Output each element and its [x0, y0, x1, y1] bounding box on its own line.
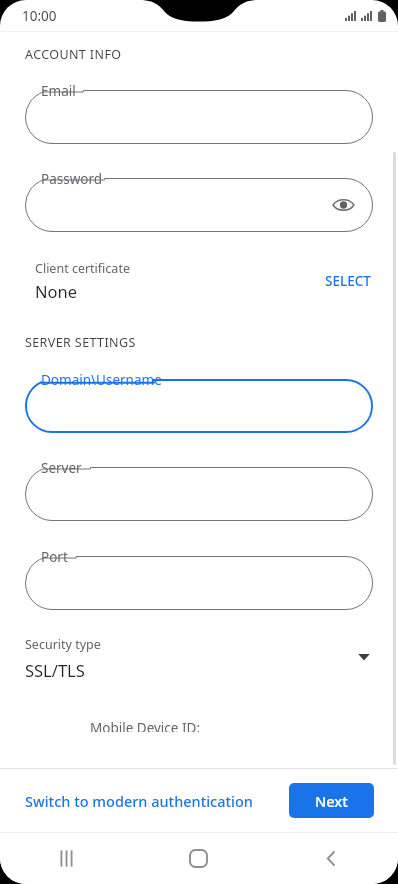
staticText: Server	[41, 459, 82, 477]
button[interactable]: Recent apps	[0, 832, 132, 884]
button[interactable]: Switch to modern authentication	[14, 783, 264, 819]
staticText: Switch to modern authentication	[25, 791, 253, 811]
staticText: Email	[41, 82, 76, 100]
staticText: None	[35, 280, 78, 302]
button[interactable]: Domain\Username	[0, 367, 398, 433]
button[interactable]: Show password	[327, 189, 359, 221]
staticText: SSL/TLS	[25, 659, 85, 681]
button[interactable]: Email	[0, 78, 398, 144]
button[interactable]: SELECT	[321, 266, 375, 296]
button[interactable]: Home	[132, 832, 265, 884]
button[interactable]: Security type	[0, 629, 398, 687]
button[interactable]: Port	[0, 544, 398, 610]
button[interactable]: Server	[0, 455, 398, 521]
staticText: Password	[41, 170, 103, 188]
staticText: Client certificate	[35, 260, 130, 277]
staticText: ACCOUNT INFO	[25, 46, 122, 63]
staticText: Domain\Username	[41, 371, 162, 389]
staticText: Next	[315, 791, 348, 811]
staticText: SELECT	[325, 272, 371, 290]
staticText: Mobile Device ID:	[90, 721, 200, 732]
button[interactable]: Show password	[0, 166, 398, 232]
button[interactable]: Next	[289, 783, 374, 818]
staticText: Security type	[25, 636, 101, 653]
staticText: Port	[41, 548, 68, 566]
staticText: SERVER SETTINGS	[25, 334, 136, 351]
button[interactable]: Back	[265, 832, 398, 884]
button[interactable]: Client certificate	[0, 252, 398, 310]
staticText: 10:00	[22, 7, 57, 25]
